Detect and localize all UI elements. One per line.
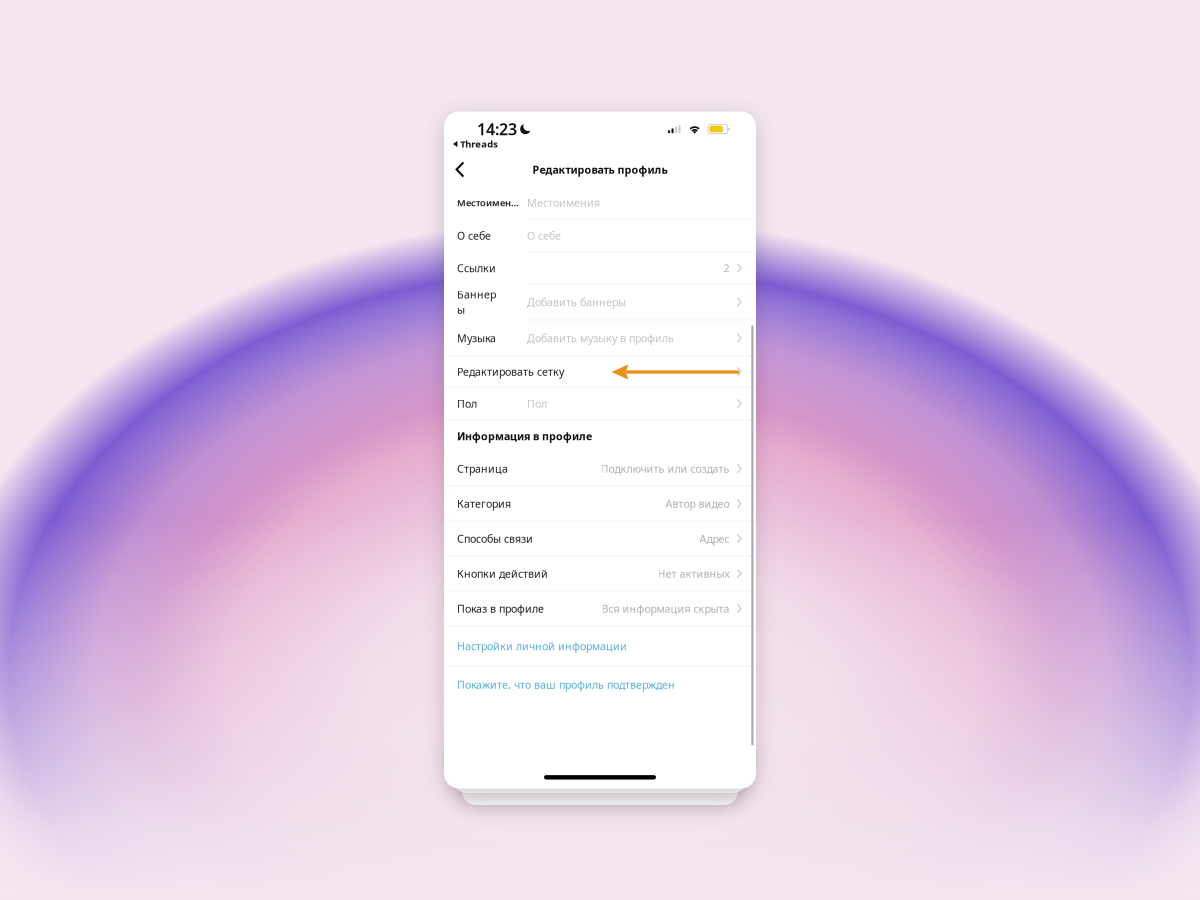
- button[interactable]: Редактировать сетку: [444, 356, 756, 387]
- staticText: Вся информация скрыта: [601, 601, 729, 616]
- staticText: Музыка: [457, 331, 496, 345]
- staticText: Настройки личной информации: [457, 639, 627, 653]
- button[interactable]: Баннер: [444, 284, 756, 320]
- button[interactable]: Покажите, что ваш профиль подтвержден: [444, 666, 756, 702]
- staticText: Threads: [460, 138, 498, 150]
- staticText: О себе: [457, 228, 491, 243]
- staticText: Добавить баннеры: [527, 295, 626, 309]
- staticText: Добавить музыку в профиль: [527, 331, 674, 345]
- button[interactable]: Категория: [444, 486, 756, 521]
- staticText: Пол: [457, 396, 477, 411]
- button[interactable]: Музыка: [444, 320, 756, 356]
- button[interactable]: О себе: [444, 219, 756, 252]
- staticText: ы: [457, 303, 465, 317]
- staticText: Редактировать профиль: [532, 162, 667, 177]
- button[interactable]: Пол: [444, 387, 756, 420]
- button[interactable]: Показ в профиле: [444, 591, 756, 626]
- staticText: Покажите, что ваш профиль подтвержден: [457, 677, 675, 692]
- staticText: Нет активных: [657, 566, 729, 581]
- staticText: Показ в профиле: [457, 601, 544, 616]
- staticText: Пол: [527, 396, 547, 411]
- button[interactable]: Back: [444, 154, 479, 185]
- staticText: 2: [723, 261, 729, 275]
- button[interactable]: Ссылки: [444, 252, 756, 284]
- staticText: Страница: [457, 461, 508, 476]
- staticText: Кнопки действий: [457, 566, 548, 581]
- staticText: Местоимен…: [457, 196, 519, 209]
- staticText: 14:23: [477, 118, 517, 140]
- staticText: Ссылки: [457, 261, 496, 275]
- button[interactable]: Страница: [444, 451, 756, 486]
- staticText: Местоимения: [527, 195, 600, 210]
- staticText: Автор видео: [665, 496, 729, 511]
- button[interactable]: Способы связи: [444, 521, 756, 556]
- staticText: О себе: [527, 228, 561, 243]
- staticText: Способы связи: [457, 531, 533, 546]
- button[interactable]: Местоимен…: [444, 186, 756, 219]
- staticText: Адрес: [699, 531, 729, 546]
- staticText: Баннер: [457, 287, 496, 302]
- staticText: Редактировать сетку: [457, 364, 564, 379]
- button[interactable]: Кнопки действий: [444, 556, 756, 591]
- button[interactable]: Настройки личной информации: [444, 626, 756, 666]
- staticText: Информация в профиле: [457, 429, 592, 443]
- staticText: Категория: [457, 496, 511, 511]
- staticText: Подключить или создать: [600, 461, 729, 476]
